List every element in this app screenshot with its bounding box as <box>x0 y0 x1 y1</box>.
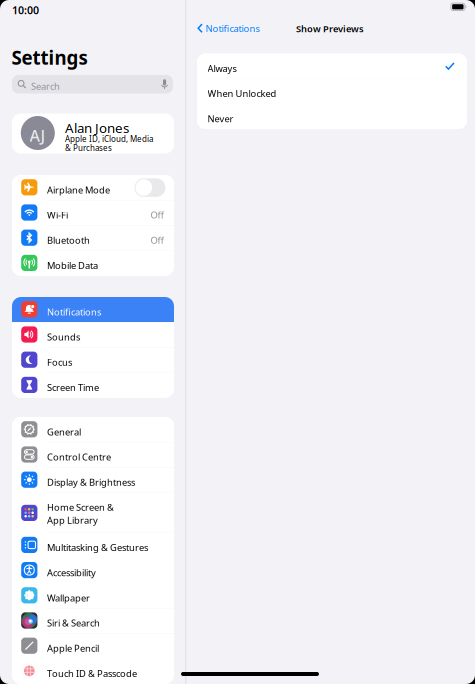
staticText: Off <box>150 209 163 221</box>
staticText: Wallpaper <box>47 592 90 604</box>
staticText: AJ <box>29 125 45 146</box>
staticText: Screen Time <box>47 381 99 394</box>
staticText: General <box>47 426 81 438</box>
button[interactable]: Always <box>197 53 467 79</box>
staticText: Show Previews <box>296 22 364 35</box>
button[interactable]: Never <box>197 104 467 129</box>
staticText: Airplane Mode <box>47 184 110 196</box>
button[interactable]: Wallpaper <box>12 583 174 608</box>
staticText: Apple ID, iCloud, Media <box>65 133 153 144</box>
staticText: Focus <box>47 356 72 368</box>
button[interactable]: Focus <box>12 347 174 373</box>
staticText: 10:00 <box>12 3 39 17</box>
staticText: Display & Brightness <box>47 476 135 488</box>
button[interactable]: Search <box>12 75 173 93</box>
button[interactable]: General <box>12 417 174 442</box>
staticText: Mobile Data <box>47 259 98 272</box>
button[interactable]: AJ <box>12 113 174 153</box>
button[interactable]: Wi-Fi <box>12 200 174 225</box>
button[interactable]: When Unlocked <box>197 79 467 104</box>
button[interactable]: Bluetooth <box>12 225 174 251</box>
staticText: Wi-Fi <box>47 209 68 221</box>
staticText: Settings <box>11 45 87 70</box>
button[interactable]: Display & Brightness <box>12 467 174 493</box>
button[interactable]: Notifications <box>193 22 255 34</box>
button[interactable]: Home Screen & <box>12 493 174 533</box>
staticText: Always <box>207 62 236 74</box>
staticText: Notifications <box>205 22 259 35</box>
button[interactable]: Airplane Mode <box>12 175 174 200</box>
staticText: Off <box>150 234 163 246</box>
button[interactable]: Apple Pencil <box>12 633 174 659</box>
staticText: Siri & Search <box>47 617 100 629</box>
staticText: Search <box>31 80 60 92</box>
staticText: Apple Pencil <box>47 642 99 654</box>
button[interactable]: Control Centre <box>12 442 174 467</box>
staticText: Touch ID & Passcode <box>47 667 137 680</box>
staticText: Sounds <box>47 331 80 343</box>
button[interactable]: Touch ID & Passcode <box>12 659 174 684</box>
staticText: & Purchases <box>65 142 112 153</box>
staticText: Control Centre <box>47 451 111 463</box>
staticText: When Unlocked <box>207 87 276 100</box>
button[interactable]: Notifications <box>12 297 174 322</box>
staticText: Accessibility <box>47 566 96 579</box>
staticText: App Library <box>47 514 98 526</box>
button[interactable]: Siri & Search <box>12 608 174 633</box>
button[interactable]: Screen Time <box>12 373 174 398</box>
staticText: Never <box>207 112 233 125</box>
staticText: Home Screen & <box>47 501 114 513</box>
button[interactable]: Accessibility <box>12 558 174 583</box>
button[interactable]: Sounds <box>12 322 174 347</box>
staticText: Bluetooth <box>47 234 90 246</box>
staticText: Alan Jones <box>65 119 129 137</box>
button[interactable]: Mobile Data <box>12 251 174 276</box>
staticText: Multitasking & Gestures <box>47 541 148 554</box>
staticText: Notifications <box>47 306 101 318</box>
button[interactable]: Multitasking & Gestures <box>12 533 174 558</box>
